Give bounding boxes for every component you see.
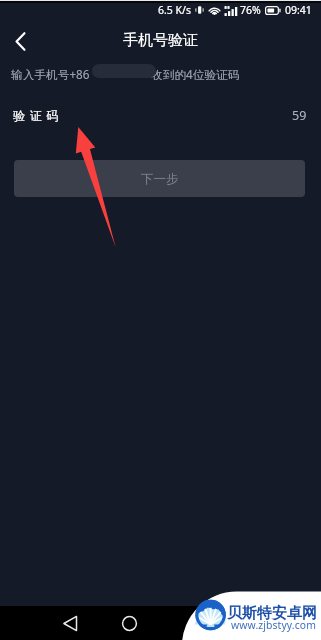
button[interactable]: 下一步 [14,160,305,197]
staticText: 贝斯特安卓网 [227,604,317,623]
button[interactable]: Back [46,606,94,640]
staticText: 手机号验证 [123,31,198,50]
staticText: 输入手机号+86 [11,66,90,80]
staticText: 76% [240,3,261,17]
button[interactable]: Back [1,22,39,60]
button[interactable]: Home [105,606,153,640]
staticText: 验证码 [13,108,64,123]
staticText: 6.5 K/s [158,3,191,17]
staticText: 下一步 [141,171,179,187]
button[interactable]: Recent apps [164,606,212,640]
staticText: 09:41 [285,3,312,17]
staticText: www.zjbstyy.com [231,618,317,632]
staticText: 收到的4位验证码 [151,66,240,80]
staticText: 59 [292,107,307,124]
